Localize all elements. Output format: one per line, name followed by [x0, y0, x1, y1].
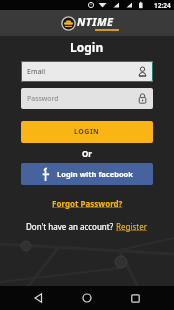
staticText: Or [82, 148, 92, 159]
staticText: Login [70, 39, 104, 55]
staticText: 12:24 [154, 1, 171, 10]
button[interactable] [111, 294, 160, 303]
button[interactable]: Register [116, 221, 148, 232]
button[interactable]: LOGIN [21, 121, 153, 143]
staticText: LOGIN [74, 127, 100, 137]
staticText: Email [27, 67, 45, 77]
staticText: Don't have an account? [26, 221, 116, 232]
button[interactable]: Password [21, 88, 153, 109]
staticText: NTIME [77, 14, 114, 29]
staticText: Password [27, 94, 59, 104]
button[interactable] [62, 293, 111, 303]
button[interactable] [14, 293, 62, 303]
staticText: Login with facebook [57, 169, 133, 179]
button[interactable]: Forgot Password? [52, 198, 123, 209]
button[interactable]: Login with facebook [21, 163, 153, 185]
button[interactable]: Email [21, 61, 153, 82]
